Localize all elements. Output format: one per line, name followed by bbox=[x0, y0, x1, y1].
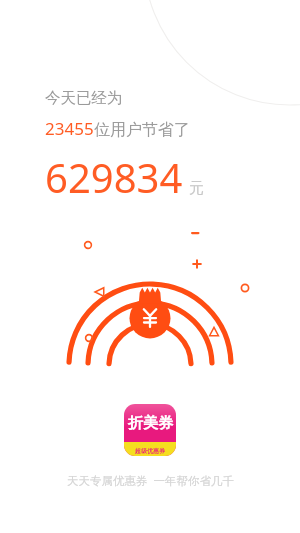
staticText: 天天专属优惠券 一年帮你省几千 bbox=[67, 473, 234, 489]
staticText: 折美券 bbox=[128, 414, 173, 433]
staticText: 23455 bbox=[45, 117, 94, 140]
staticText: 元 bbox=[189, 179, 204, 198]
staticText: 629834 bbox=[45, 150, 183, 204]
staticText: 超级优惠券 bbox=[135, 447, 165, 455]
staticText: 今天已经为 bbox=[45, 88, 123, 108]
button[interactable]: 折美券 app icon bbox=[124, 404, 176, 456]
staticText: 位用户节省了 bbox=[94, 120, 190, 140]
